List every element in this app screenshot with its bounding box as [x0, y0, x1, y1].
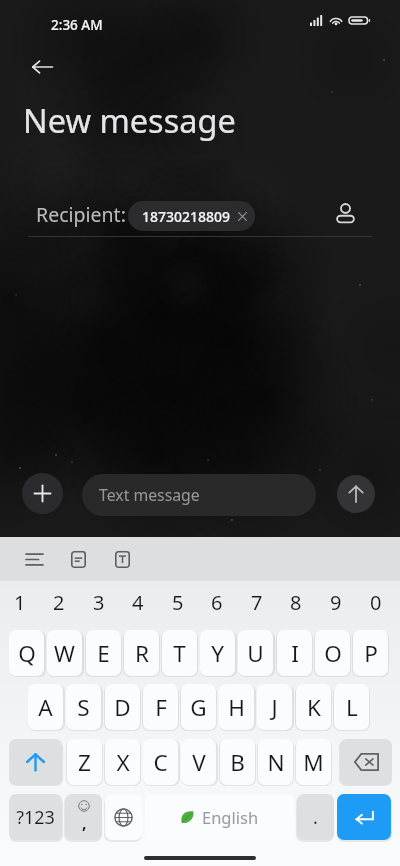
button[interactable]: S: [66, 684, 101, 730]
button[interactable]: B: [220, 739, 255, 785]
button[interactable]: P: [353, 630, 388, 676]
staticText: 5: [172, 589, 184, 616]
button[interactable]: M: [296, 739, 331, 785]
staticText: P: [364, 638, 378, 669]
staticText: G: [190, 692, 207, 723]
button[interactable]: K: [296, 684, 331, 730]
staticText: I: [291, 638, 299, 669]
staticText: 8: [290, 589, 302, 616]
staticText: A: [38, 692, 53, 723]
button[interactable]: Text message: [82, 474, 316, 516]
staticText: U: [247, 638, 264, 669]
button[interactable]: X: [105, 739, 140, 785]
button[interactable]: 18730218809: [128, 201, 255, 231]
button[interactable]: 0: [357, 582, 395, 622]
button[interactable]: W: [47, 630, 82, 676]
button[interactable]: .: [297, 794, 334, 840]
staticText: 0: [370, 589, 382, 616]
staticText: 3: [93, 589, 105, 616]
button[interactable]: Q: [9, 630, 44, 676]
button[interactable]: 5: [159, 582, 197, 622]
button[interactable]: Y: [200, 630, 235, 676]
button[interactable]: T: [162, 630, 197, 676]
button[interactable]: Emoji: [65, 794, 102, 840]
button[interactable]: ?123: [9, 794, 62, 840]
button[interactable]: C: [143, 739, 178, 785]
button[interactable]: 2: [40, 582, 78, 622]
staticText: 18730218809: [142, 207, 231, 226]
button[interactable]: 7: [238, 582, 276, 622]
button[interactable]: 4: [119, 582, 157, 622]
button[interactable]: J: [257, 684, 292, 730]
staticText: K: [307, 692, 321, 723]
staticText: ?123: [16, 805, 55, 830]
button[interactable]: Back: [22, 47, 62, 87]
staticText: S: [77, 692, 90, 723]
staticText: English: [202, 806, 259, 828]
staticText: ,: [82, 812, 87, 834]
staticText: F: [155, 692, 167, 723]
staticText: Z: [78, 747, 91, 778]
staticText: L: [346, 692, 358, 723]
button[interactable]: Text editing: [64, 545, 92, 573]
staticText: B: [230, 747, 245, 778]
button[interactable]: Shift: [9, 739, 62, 785]
staticText: N: [267, 747, 285, 778]
staticText: V: [192, 747, 206, 778]
staticText: W: [54, 638, 75, 669]
button[interactable]: Add attachment: [22, 473, 63, 514]
staticText: .: [313, 805, 318, 830]
button[interactable]: Backspace: [340, 739, 392, 785]
staticText: 7: [251, 589, 263, 616]
button[interactable]: 8: [277, 582, 315, 622]
button[interactable]: Choose contact: [327, 196, 363, 232]
staticText: New message: [23, 98, 236, 142]
button[interactable]: English: [145, 794, 294, 840]
button[interactable]: R: [124, 630, 159, 676]
staticText: X: [116, 747, 130, 778]
staticText: M: [303, 747, 324, 778]
button[interactable]: H: [219, 684, 254, 730]
staticText: E: [97, 638, 110, 669]
button[interactable]: Clipboard: [20, 545, 48, 573]
button[interactable]: O: [315, 630, 350, 676]
button[interactable]: A: [28, 684, 63, 730]
staticText: Recipient:: [36, 201, 126, 228]
staticText: 4: [132, 589, 144, 616]
staticText: 6: [211, 589, 223, 616]
staticText: Text message: [99, 484, 200, 506]
button[interactable]: Text style: [108, 545, 136, 573]
button[interactable]: G: [181, 684, 216, 730]
staticText: H: [228, 692, 245, 723]
staticText: O: [324, 638, 342, 669]
button[interactable]: N: [258, 739, 293, 785]
staticText: 2: [53, 589, 65, 616]
button[interactable]: Enter: [337, 794, 391, 840]
button[interactable]: U: [238, 630, 273, 676]
staticText: Y: [211, 638, 224, 669]
button[interactable]: 1: [1, 582, 39, 622]
staticText: 1: [14, 589, 26, 616]
button[interactable]: 6: [198, 582, 236, 622]
staticText: 2:36 AM: [51, 16, 103, 34]
button[interactable]: Change keyboard: [105, 794, 142, 840]
staticText: J: [271, 692, 278, 723]
button[interactable]: L: [334, 684, 369, 730]
button[interactable]: V: [181, 739, 216, 785]
staticText: Q: [18, 638, 36, 669]
button[interactable]: E: [86, 630, 121, 676]
button[interactable]: Z: [67, 739, 102, 785]
button[interactable]: Send: [337, 475, 375, 513]
button[interactable]: 9: [317, 582, 355, 622]
staticText: T: [173, 638, 186, 669]
button[interactable]: I: [277, 630, 312, 676]
staticText: 9: [330, 589, 342, 616]
staticText: R: [135, 638, 149, 669]
button[interactable]: D: [105, 684, 140, 730]
staticText: C: [153, 747, 168, 778]
staticText: D: [114, 692, 131, 723]
button[interactable]: F: [143, 684, 178, 730]
button[interactable]: 3: [80, 582, 118, 622]
